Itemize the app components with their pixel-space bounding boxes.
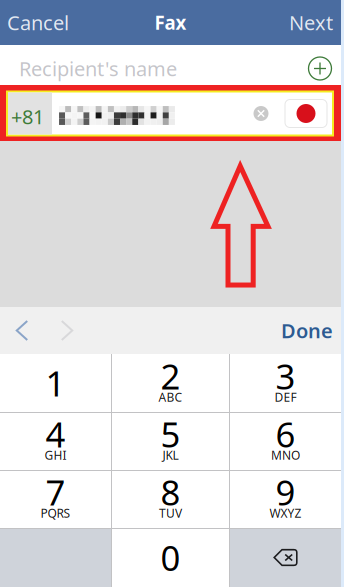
button[interactable]: 9	[230, 470, 341, 528]
staticText: WXYZ	[269, 505, 301, 521]
button[interactable]: Next	[279, 0, 341, 45]
staticText: 0	[160, 534, 180, 580]
staticText: 4	[45, 411, 65, 457]
button[interactable]: Next field	[44, 307, 90, 353]
staticText: PQRS	[40, 505, 70, 521]
staticText: 6	[275, 411, 295, 457]
staticText: 8	[160, 469, 180, 515]
staticText: 7	[45, 469, 65, 515]
staticText: TUV	[159, 505, 182, 521]
staticText: 1	[45, 360, 65, 406]
staticText: 3	[275, 353, 295, 399]
staticText: 5	[160, 411, 180, 457]
staticText: Fax	[154, 10, 186, 35]
staticText: ABC	[158, 389, 182, 405]
staticText: MNO	[271, 447, 300, 463]
button[interactable]: 2	[112, 354, 229, 412]
button[interactable]: Country code	[285, 92, 327, 134]
staticText: DEF	[274, 389, 296, 405]
staticText: Done	[281, 317, 333, 344]
staticText: 9	[275, 469, 295, 515]
button[interactable]: Cancel	[0, 0, 79, 45]
staticText: Cancel	[7, 9, 69, 36]
staticText: 2	[160, 353, 180, 399]
button[interactable]: 6	[230, 412, 341, 470]
staticText: GHI	[44, 447, 66, 463]
button[interactable]: 4	[0, 412, 111, 470]
button[interactable]: Clear text	[245, 92, 277, 134]
button[interactable]: Delete	[230, 528, 341, 587]
staticText: Next	[289, 9, 333, 36]
button[interactable]: 5	[112, 412, 229, 470]
staticText: JKL	[162, 447, 178, 463]
button[interactable]: 7	[0, 470, 111, 528]
staticText: Recipient's name	[19, 55, 177, 82]
staticText: +81	[11, 103, 44, 130]
button[interactable]: Done	[267, 307, 341, 353]
button[interactable]: 1	[0, 354, 111, 412]
button[interactable]: Add recipient	[300, 48, 340, 88]
button[interactable]: Previous field	[0, 307, 44, 353]
button[interactable]: 8	[112, 470, 229, 528]
button[interactable]: 0	[112, 528, 229, 587]
button[interactable]: 3	[230, 354, 341, 412]
